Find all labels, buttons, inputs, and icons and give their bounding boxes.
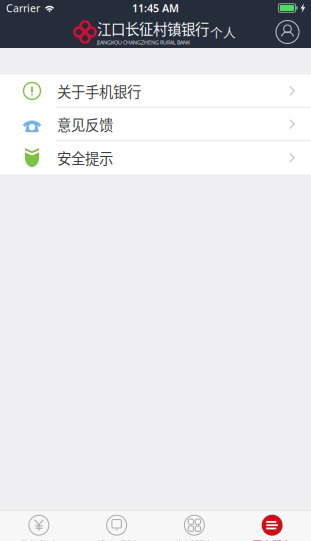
staticText: 安全提示 xyxy=(57,147,113,168)
button[interactable]: 投资理财 xyxy=(78,511,156,541)
staticText: 我的账户 xyxy=(19,538,59,541)
staticText: 11:45 AM xyxy=(132,1,179,15)
staticText: 生活服务 xyxy=(174,538,214,541)
staticText: 更多服务 xyxy=(252,538,292,541)
button[interactable]: 我的账户 xyxy=(0,511,78,541)
staticText: 关于手机银行 xyxy=(57,80,141,101)
staticText: 个人 xyxy=(210,23,236,41)
button[interactable]: 更多服务 xyxy=(233,511,311,541)
button[interactable]: Account xyxy=(276,20,299,43)
button[interactable]: 生活服务 xyxy=(155,511,233,541)
button[interactable]: 关于手机银行 xyxy=(0,75,311,108)
staticText: 江口长征村镇银行 xyxy=(97,18,209,39)
staticText: 意见反馈 xyxy=(57,114,113,135)
staticText: Carrier xyxy=(6,1,40,15)
staticText: 投资理财 xyxy=(97,538,137,541)
button[interactable]: 意见反馈 xyxy=(0,108,311,141)
staticText: JIANGKOU CHANGZHENG RURAL BANK xyxy=(97,39,190,46)
button[interactable]: 安全提示 xyxy=(0,141,311,174)
